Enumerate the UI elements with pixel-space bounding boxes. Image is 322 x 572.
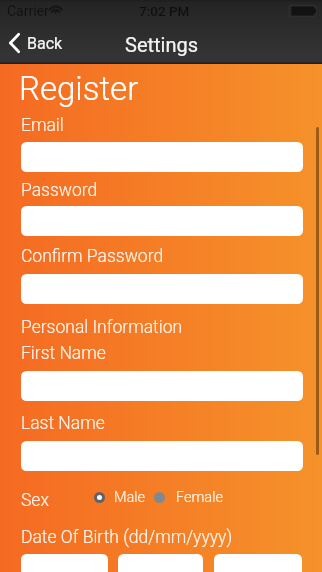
staticText: Personal Information xyxy=(21,317,183,338)
button[interactable]: Male xyxy=(92,486,148,508)
staticText: First Name xyxy=(21,343,106,364)
button[interactable]: Female xyxy=(152,486,222,508)
button[interactable] xyxy=(21,206,303,236)
staticText: Confirm Password xyxy=(21,246,164,267)
button[interactable] xyxy=(21,554,108,572)
button[interactable]: Back xyxy=(4,22,66,64)
staticText: Password xyxy=(21,180,98,201)
button[interactable] xyxy=(214,554,302,572)
staticText: Email xyxy=(21,115,64,136)
staticText: Last Name xyxy=(21,413,105,434)
button[interactable] xyxy=(21,371,303,401)
button[interactable] xyxy=(118,554,203,572)
button[interactable] xyxy=(21,441,303,471)
staticText: Settings xyxy=(125,33,199,56)
staticText: Male xyxy=(114,489,146,506)
staticText: Register xyxy=(19,69,139,108)
staticText: Female xyxy=(176,489,223,506)
staticText: Sex xyxy=(21,490,49,511)
staticText: 7:02 PM xyxy=(139,3,190,19)
staticText: Date Of Birth (dd/mm/yyyy) xyxy=(21,527,233,548)
staticText: Carrier xyxy=(7,3,49,19)
button[interactable] xyxy=(21,274,303,304)
button[interactable] xyxy=(21,142,303,172)
staticText: Back xyxy=(27,34,63,53)
